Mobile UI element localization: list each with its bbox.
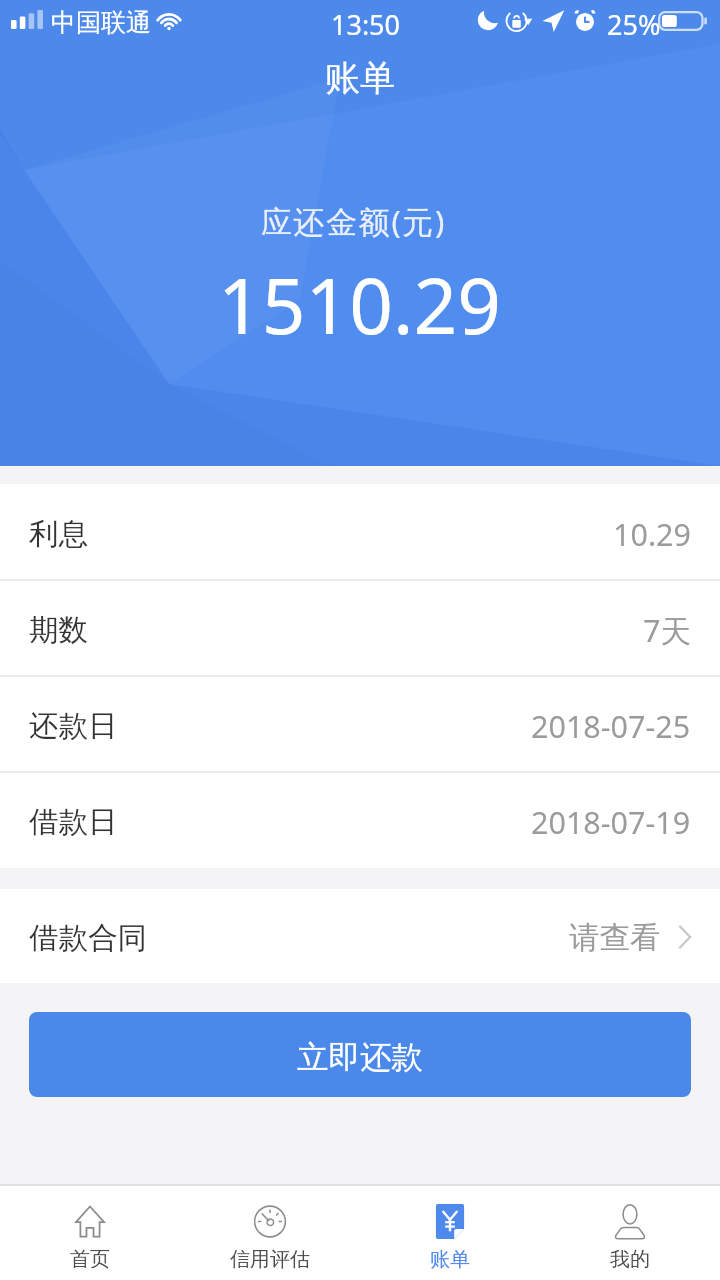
staticText: 7天 bbox=[643, 609, 691, 651]
staticText: 10.29 bbox=[613, 513, 691, 555]
staticText: 中国联通 bbox=[51, 7, 151, 38]
button[interactable]: 期数 bbox=[0, 580, 720, 676]
button[interactable]: 首页 bbox=[0, 1186, 180, 1280]
button[interactable]: 我的 bbox=[540, 1186, 720, 1280]
other: 我的 bbox=[614, 1204, 646, 1239]
other: 账单 bbox=[434, 1204, 466, 1239]
staticText: 应还金额(元) bbox=[261, 200, 446, 242]
button[interactable]: 借款日 bbox=[0, 772, 720, 868]
staticText: 还款日 bbox=[29, 708, 118, 745]
staticText: 2018-07-25 bbox=[531, 705, 691, 747]
staticText: 请查看 bbox=[569, 919, 661, 957]
staticText: 立即还款 bbox=[297, 1038, 423, 1078]
button[interactable]: 立即还款 bbox=[29, 1012, 691, 1097]
staticText: 借款合同 bbox=[29, 920, 147, 957]
staticText: 利息 bbox=[29, 516, 88, 553]
staticText: 期数 bbox=[29, 612, 88, 649]
button[interactable]: 借款合同 bbox=[0, 889, 720, 983]
staticText: 1510.29 bbox=[218, 252, 502, 356]
other: 首页 bbox=[74, 1204, 106, 1239]
button[interactable]: 还款日 bbox=[0, 676, 720, 772]
staticText: 25% bbox=[607, 6, 661, 43]
staticText: 信用评估 bbox=[230, 1247, 310, 1272]
staticText: 13:50 bbox=[331, 6, 401, 43]
button[interactable]: 信用评估 bbox=[180, 1186, 360, 1280]
staticText: 2018-07-19 bbox=[531, 801, 691, 843]
staticText: 首页 bbox=[70, 1247, 110, 1272]
button[interactable]: 账单 bbox=[360, 1186, 540, 1280]
staticText: 借款日 bbox=[29, 804, 118, 841]
staticText: 我的 bbox=[610, 1247, 650, 1272]
other: 信用评估 bbox=[254, 1204, 286, 1239]
button[interactable]: 利息 bbox=[0, 484, 720, 580]
staticText: 账单 bbox=[325, 56, 395, 100]
staticText: 账单 bbox=[430, 1247, 470, 1272]
